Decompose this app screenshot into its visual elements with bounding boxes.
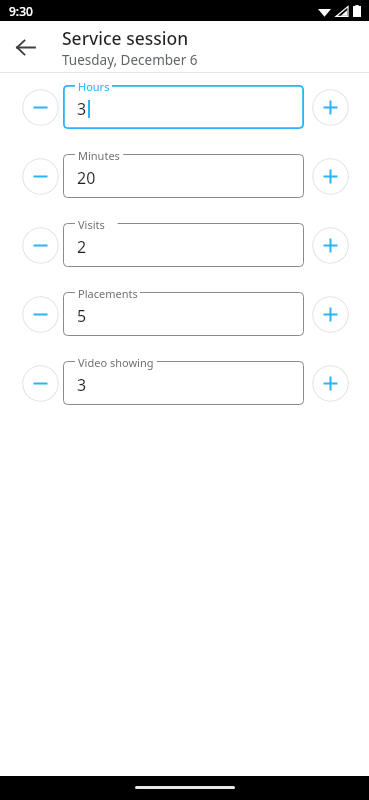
button[interactable]: Video showing	[63, 361, 304, 405]
button[interactable]: Hours	[63, 85, 304, 129]
button[interactable]: Visits	[63, 223, 304, 267]
button[interactable]: Decrease Visits	[22, 227, 59, 264]
button[interactable]: Decrease Minutes	[22, 158, 59, 195]
staticText: Service session	[62, 26, 189, 50]
button[interactable]: Increase Minutes	[312, 158, 349, 195]
button[interactable]: Minutes	[63, 154, 304, 198]
button[interactable]: Increase Placements	[312, 296, 349, 333]
staticText: Placements	[78, 286, 138, 301]
staticText: 5	[77, 305, 87, 327]
button[interactable]: Decrease Hours	[22, 89, 59, 126]
staticText: Hours	[78, 79, 110, 94]
button[interactable]: Placements	[63, 292, 304, 336]
staticText: 3	[77, 374, 87, 396]
staticText: Visits	[78, 217, 105, 232]
staticText: 20	[77, 167, 96, 189]
staticText: Video showing	[78, 355, 154, 370]
button[interactable]: Increase Video showing	[312, 365, 349, 402]
staticText: Tuesday, December 6	[62, 51, 198, 69]
staticText: 2	[77, 236, 87, 258]
button[interactable]: Back	[6, 28, 44, 66]
button[interactable]: Increase Hours	[312, 89, 349, 126]
button[interactable]: Increase Visits	[312, 227, 349, 264]
staticText: Minutes	[78, 148, 120, 163]
staticText: 9:30	[9, 3, 33, 19]
button[interactable]: Decrease Placements	[22, 296, 59, 333]
staticText: 3	[77, 98, 87, 120]
button[interactable]: Decrease Video showing	[22, 365, 59, 402]
